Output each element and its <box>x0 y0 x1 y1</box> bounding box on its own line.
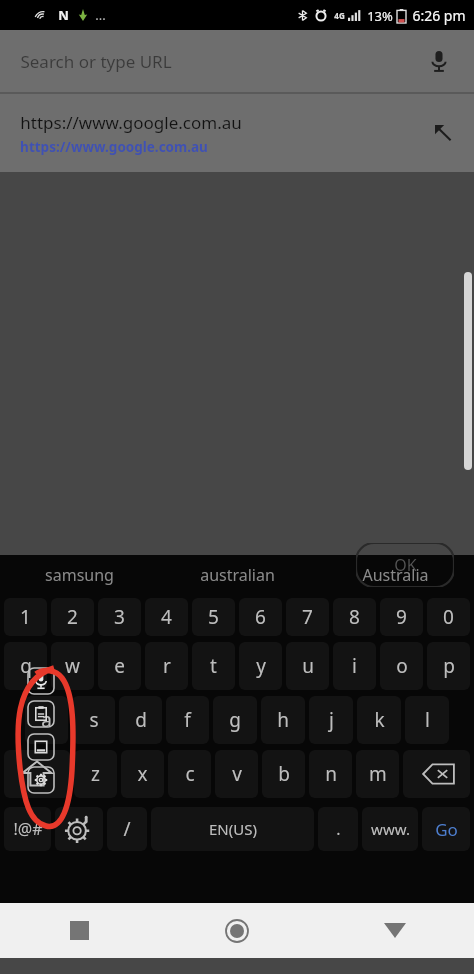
button[interactable]: a <box>25 696 68 744</box>
staticText: 4 <box>161 604 172 630</box>
staticText: k <box>374 707 385 733</box>
button[interactable]: w <box>51 642 94 690</box>
staticText: m <box>369 761 387 787</box>
staticText: y <box>256 653 266 679</box>
button[interactable]: . <box>318 807 358 851</box>
staticText: 9 <box>396 604 407 630</box>
button[interactable]: 1 <box>4 598 47 636</box>
button[interactable]: Home <box>158 903 316 958</box>
button[interactable]: i <box>333 642 376 690</box>
button[interactable]: 3 <box>98 598 141 636</box>
staticText: OK <box>394 554 417 576</box>
staticText: j <box>329 707 334 733</box>
staticText: 3 <box>114 604 125 630</box>
staticText: i <box>352 653 357 679</box>
button[interactable]: / <box>107 807 147 851</box>
staticText: 4G <box>334 10 345 21</box>
button[interactable]: Recent apps <box>0 903 158 958</box>
staticText: s <box>89 707 99 733</box>
button[interactable]: www. <box>362 807 418 851</box>
staticText: / <box>123 816 131 842</box>
staticText: p <box>443 653 455 679</box>
button[interactable]: Voice search <box>424 46 454 76</box>
button[interactable]: Keyboard settings <box>55 807 103 851</box>
button[interactable]: p <box>427 642 470 690</box>
staticText: z <box>91 761 100 787</box>
button[interactable]: c <box>168 750 211 798</box>
button[interactable]: k <box>357 696 401 744</box>
staticText: ... <box>95 6 106 24</box>
button[interactable]: 8 <box>333 598 376 636</box>
button[interactable]: Back <box>316 903 474 958</box>
button[interactable]: samsung <box>0 555 158 595</box>
button[interactable]: OK <box>356 543 454 587</box>
staticText: l <box>425 707 430 733</box>
staticText: !@# <box>13 818 43 840</box>
button[interactable]: !@# <box>4 807 51 851</box>
staticText: h <box>277 707 289 733</box>
staticText: u <box>302 653 314 679</box>
button[interactable]: q <box>4 642 47 690</box>
button[interactable]: 7 <box>286 598 329 636</box>
button[interactable]: Handwriting <box>28 734 54 760</box>
button[interactable]: Australia <box>316 555 474 595</box>
button[interactable]: y <box>239 642 282 690</box>
staticText: d <box>135 707 147 733</box>
button[interactable]: Go <box>422 807 470 851</box>
button[interactable]: v <box>215 750 258 798</box>
button[interactable]: l <box>405 696 449 744</box>
staticText: 8 <box>349 604 360 630</box>
button[interactable]: r <box>145 642 188 690</box>
staticText: x <box>137 761 148 787</box>
button[interactable]: h <box>261 696 305 744</box>
button[interactable]: m <box>356 750 399 798</box>
button[interactable]: u <box>286 642 329 690</box>
staticText: australian <box>200 564 275 586</box>
staticText: Australia <box>362 564 429 586</box>
button[interactable]: 0 <box>427 598 470 636</box>
button[interactable]: z <box>74 750 117 798</box>
button[interactable]: j <box>309 696 353 744</box>
button[interactable]: 6 <box>239 598 282 636</box>
staticText: samsung <box>45 564 114 586</box>
staticText: e <box>114 653 125 679</box>
button[interactable]: Settings <box>28 767 54 793</box>
button[interactable]: x <box>121 750 164 798</box>
staticText: Go <box>435 818 458 841</box>
button[interactable]: n <box>309 750 352 798</box>
button[interactable]: 4 <box>145 598 188 636</box>
button[interactable]: Shift <box>4 750 70 798</box>
staticText: c <box>185 761 195 787</box>
staticText: 2 <box>67 604 78 630</box>
button[interactable]: Search or type URL <box>0 30 474 92</box>
button[interactable]: Backspace <box>403 750 470 798</box>
staticText: n <box>325 761 337 787</box>
button[interactable]: o <box>380 642 423 690</box>
staticText: 6:26 pm <box>412 6 466 25</box>
button[interactable]: https://www.google.com.au <box>0 94 474 172</box>
button[interactable]: s <box>72 696 115 744</box>
button[interactable]: Insert suggestion <box>426 116 460 150</box>
button[interactable]: EN(US) <box>151 807 314 851</box>
button[interactable]: d <box>119 696 162 744</box>
button[interactable]: 5 <box>192 598 235 636</box>
button[interactable]: Clipboard <box>28 701 54 727</box>
button[interactable]: 9 <box>380 598 423 636</box>
button[interactable]: Voice input <box>28 668 54 694</box>
button[interactable]: australian <box>158 555 316 595</box>
staticText: https://www.google.com.au <box>20 138 208 156</box>
button[interactable]: f <box>166 696 209 744</box>
staticText: EN(US) <box>209 819 257 839</box>
button[interactable]: 2 <box>51 598 94 636</box>
staticText: 5 <box>208 604 219 630</box>
staticText: o <box>396 653 408 679</box>
button[interactable]: t <box>192 642 235 690</box>
button[interactable]: b <box>262 750 305 798</box>
button[interactable]: g <box>213 696 257 744</box>
button[interactable]: e <box>98 642 141 690</box>
staticText: a <box>41 707 52 733</box>
staticText: Search or type URL <box>20 50 172 73</box>
staticText: 0 <box>443 604 454 630</box>
staticText: 7 <box>302 604 313 630</box>
staticText: q <box>20 653 32 679</box>
